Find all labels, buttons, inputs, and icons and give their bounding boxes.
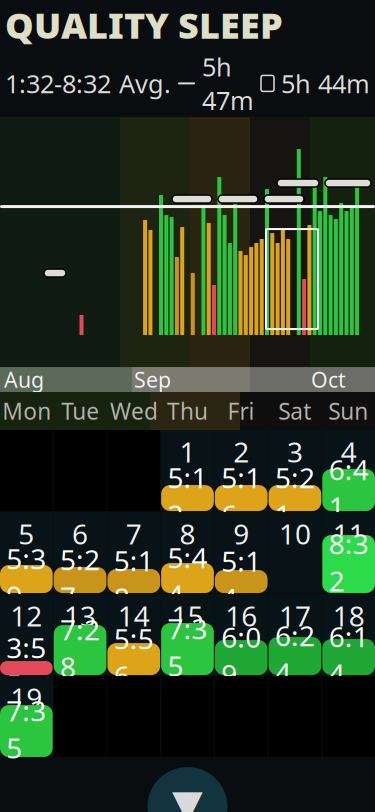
button[interactable]: Day 2	[215, 430, 268, 511]
button[interactable]: Day 1	[161, 430, 214, 511]
staticText: 18	[333, 597, 365, 634]
staticText: Sun	[328, 396, 368, 426]
staticText: 6:14	[329, 618, 369, 692]
staticText: Thu	[167, 396, 208, 426]
staticText: 8:32	[329, 525, 369, 599]
staticText: 6:24	[275, 617, 315, 691]
button[interactable]: Day 5	[0, 512, 53, 593]
staticText: 11	[333, 515, 365, 552]
staticText: 13	[64, 597, 96, 634]
button[interactable]: Day 7	[107, 512, 160, 593]
staticText: Tue	[61, 396, 99, 426]
staticText: 14	[118, 597, 150, 634]
button[interactable]: Day 3	[269, 430, 321, 511]
staticText: ▼	[172, 781, 203, 812]
button[interactable]: Day 14	[107, 594, 160, 675]
button[interactable]: Day 8	[161, 512, 214, 593]
button[interactable]: Day 17	[269, 594, 321, 675]
button[interactable]: Day 15	[161, 594, 214, 675]
staticText: 5:18	[114, 542, 154, 616]
staticText: 2	[233, 433, 249, 470]
staticText: 1	[179, 433, 195, 470]
staticText: 5:12	[167, 459, 207, 533]
staticText: Sep	[134, 365, 171, 394]
button[interactable]: Month scrubber	[0, 367, 375, 392]
staticText: 17	[279, 597, 311, 634]
staticText: 3:55	[6, 629, 46, 703]
staticText: Mon	[2, 396, 51, 426]
staticText: 10	[279, 515, 311, 552]
staticText: 5	[18, 515, 34, 552]
button[interactable]: Day 6	[54, 512, 106, 593]
staticText: Sat	[278, 396, 311, 426]
staticText: 6:41	[329, 451, 369, 525]
staticText: 5:56	[114, 620, 154, 694]
staticText: 6:09	[221, 618, 261, 693]
button[interactable]: Day 13	[54, 594, 106, 675]
staticText: 9	[233, 515, 249, 552]
staticText: Oct	[311, 365, 346, 394]
button[interactable]: Day 4	[322, 430, 375, 511]
button[interactable]: Day 11	[322, 512, 375, 593]
button[interactable]: Day 12	[0, 594, 53, 675]
staticText: 1:32-8:32	[5, 67, 111, 100]
staticText: 5h 44m	[281, 67, 370, 100]
staticText: 7	[126, 515, 142, 552]
staticText: Aug	[4, 365, 44, 394]
staticText: 3	[287, 433, 303, 470]
staticText: 15	[171, 597, 203, 634]
staticText: 19	[10, 679, 42, 716]
staticText: 16	[225, 597, 257, 634]
staticText: 8	[179, 515, 195, 552]
staticText: 5:14	[221, 542, 261, 617]
staticText: 5:16	[221, 459, 261, 533]
button[interactable]: Filter	[137, 757, 237, 812]
staticText: 4	[341, 433, 357, 470]
staticText: 6	[72, 515, 88, 552]
button[interactable]: Day 10	[269, 512, 321, 593]
staticText: QUALITY SLEEP	[5, 1, 283, 49]
staticText: 5:21	[275, 459, 315, 533]
button[interactable]: Day 16	[215, 594, 268, 675]
staticText: 7:28	[60, 611, 100, 685]
staticText: Avg.	[119, 67, 171, 100]
staticText: Fri	[228, 396, 255, 426]
staticText: 5:39	[6, 540, 46, 614]
staticText: 7:35	[167, 610, 207, 684]
staticText: Wed	[110, 396, 158, 426]
staticText: 5:27	[60, 541, 100, 615]
button[interactable]: Day 9	[215, 512, 268, 593]
staticText: 5h 47m	[202, 50, 254, 117]
button[interactable]: Day 18	[322, 594, 375, 675]
staticText: 7:35	[6, 692, 46, 766]
staticText: 5:44	[167, 539, 207, 613]
button[interactable]: Day 19	[0, 676, 53, 757]
staticText: 12	[10, 597, 42, 634]
